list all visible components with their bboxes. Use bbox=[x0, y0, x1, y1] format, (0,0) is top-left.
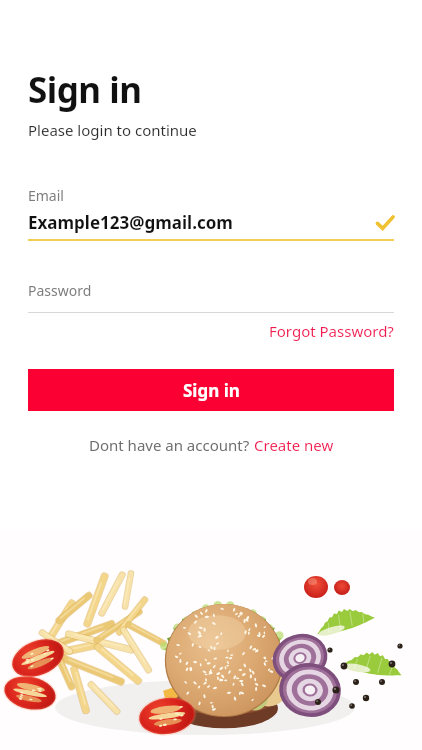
staticText: Example123@gmail.com bbox=[28, 211, 376, 234]
staticText: Sign in bbox=[183, 379, 240, 402]
button[interactable]: Sign in bbox=[28, 369, 394, 411]
button[interactable]: Email bbox=[28, 186, 394, 241]
staticText: Dont have an account? bbox=[89, 435, 254, 455]
button[interactable]: Password bbox=[28, 281, 394, 313]
staticText: Please login to continue bbox=[28, 120, 197, 140]
staticText: Forgot Password? bbox=[269, 321, 394, 341]
button[interactable]: Forgot Password? bbox=[269, 321, 394, 341]
staticText: Password bbox=[28, 281, 92, 300]
staticText: Email bbox=[28, 186, 64, 205]
staticText: Create new bbox=[254, 435, 334, 455]
button[interactable]: Create new bbox=[254, 435, 334, 455]
staticText: Sign in bbox=[28, 66, 142, 114]
